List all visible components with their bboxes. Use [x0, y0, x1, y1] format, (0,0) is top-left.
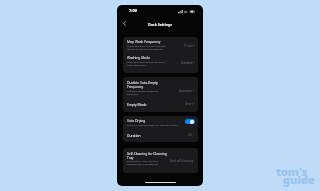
staticText: Dustbin Auto-Empty Frequency: [127, 80, 158, 89]
staticText: Washing Mode: [127, 55, 150, 60]
staticText: Automatic: [179, 89, 192, 93]
button[interactable]: [123, 150, 198, 172]
staticText: Start self-cleaning: [170, 159, 193, 163]
button[interactable]: [123, 101, 198, 109]
button[interactable]: [123, 38, 198, 54]
staticText: guide: [283, 172, 315, 187]
staticText: Auto Drying: [127, 118, 145, 123]
button[interactable]: [123, 118, 198, 130]
staticText: Choose a dustbin emptying frequency: [127, 89, 158, 95]
staticText: Self-Cleaning for Cleaning Tray: [127, 151, 167, 160]
staticText: Dries the mop with warm air after each w…: [127, 123, 178, 126]
staticText: 2 h: [188, 133, 192, 137]
button[interactable]: [123, 132, 198, 140]
staticText: Select frequency at which the mop return…: [127, 44, 166, 50]
staticText: 15 min: [184, 44, 193, 48]
staticText: Standard: [181, 61, 193, 65]
staticText: tom's: [276, 164, 308, 179]
button[interactable]: [123, 79, 198, 100]
staticText: 7:08: [129, 8, 137, 13]
staticText: Dock Settings: [148, 22, 172, 27]
button[interactable]: Auto Drying toggle: [185, 119, 195, 124]
staticText: Empty Mode: [127, 102, 146, 107]
staticText: Mop Wash Frequency: [127, 39, 160, 44]
staticText: Duration: [127, 133, 141, 138]
button[interactable]: [123, 55, 198, 70]
staticText: Smart: [185, 102, 193, 106]
button[interactable]: Back: [120, 19, 129, 28]
staticText: Select washing intensity based on floor …: [127, 60, 165, 66]
staticText: Occasionally clean the dock cleaning tra…: [127, 159, 158, 165]
